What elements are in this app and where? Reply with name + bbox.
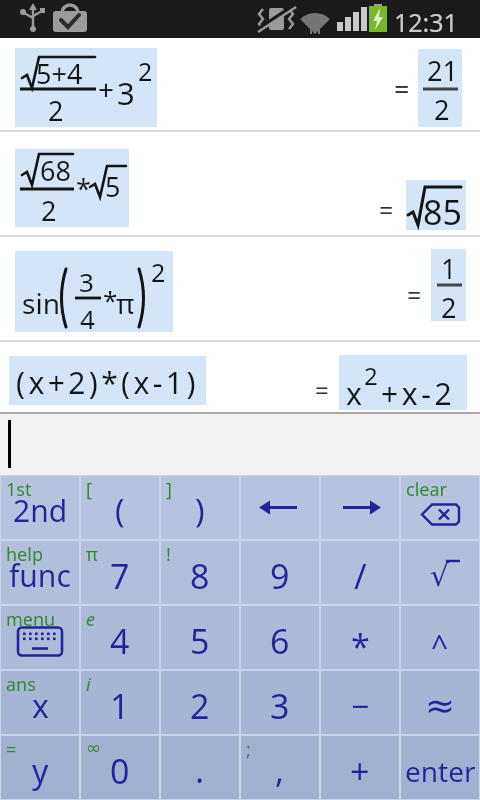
button[interactable]: − xyxy=(321,671,399,734)
staticText: help xyxy=(6,542,43,567)
button[interactable]: menu xyxy=(1,606,79,669)
button[interactable]: * xyxy=(321,606,399,669)
button[interactable]: ( xyxy=(81,476,159,539)
button[interactable]: enter xyxy=(401,736,479,799)
button[interactable]: clear xyxy=(401,476,479,539)
button[interactable]: . xyxy=(161,736,239,799)
staticText: 2nd xyxy=(13,490,68,531)
staticText: = xyxy=(407,278,422,312)
button[interactable]: ^ xyxy=(401,606,479,669)
staticText: 9 xyxy=(270,553,290,599)
staticText: ans xyxy=(6,672,36,697)
staticText: 2 xyxy=(151,255,166,289)
staticText: 5+4 xyxy=(36,55,83,92)
staticText: + xyxy=(98,70,115,108)
staticText: x xyxy=(346,373,362,414)
button[interactable]: x xyxy=(1,671,79,734)
button[interactable]: / xyxy=(321,541,399,604)
button[interactable]: 7 xyxy=(81,541,159,604)
staticText: 21 xyxy=(427,52,458,89)
staticText: y xyxy=(32,749,49,793)
staticText: , xyxy=(275,747,285,793)
button[interactable]: 8 xyxy=(161,541,239,604)
button[interactable]: ≈ xyxy=(401,671,479,734)
button[interactable]: (x+2)*(x-1) xyxy=(0,342,480,412)
staticText: 1 xyxy=(110,683,130,729)
staticText: 12:31 xyxy=(394,5,458,39)
staticText: π xyxy=(86,542,98,567)
button[interactable]: 3 xyxy=(241,671,319,734)
staticText: 8 xyxy=(190,553,210,599)
button[interactable]: sin xyxy=(0,238,480,342)
staticText: i xyxy=(86,672,91,697)
staticText: = xyxy=(6,737,17,762)
staticText: π xyxy=(116,284,135,322)
staticText: enter xyxy=(405,752,476,790)
button[interactable]: 0 xyxy=(81,736,159,799)
staticText: 68 xyxy=(40,152,71,189)
staticText: +x-2 xyxy=(381,373,456,414)
staticText: * xyxy=(76,170,91,207)
staticText: ≈ xyxy=(425,685,456,727)
staticText: + xyxy=(350,748,370,794)
staticText: 3 xyxy=(117,72,135,114)
staticText: ∞ xyxy=(86,737,101,758)
staticText: sin xyxy=(22,284,60,322)
button[interactable]: 6 xyxy=(241,606,319,669)
staticText: 3 xyxy=(79,264,94,299)
staticText: ) xyxy=(195,489,205,533)
staticText: 5 xyxy=(190,618,210,664)
staticText: (x+2)*(x-1) xyxy=(16,362,199,403)
staticText: 5 xyxy=(105,168,121,205)
staticText: func xyxy=(9,555,71,596)
staticText: [ xyxy=(86,477,92,502)
staticText: = xyxy=(394,70,410,107)
button[interactable]: y xyxy=(1,736,79,799)
staticText: √ xyxy=(430,558,450,593)
button[interactable]: √ xyxy=(401,541,479,604)
staticText: 85 xyxy=(423,189,462,235)
button[interactable]: 5+4 xyxy=(0,40,480,132)
button[interactable]: 2nd xyxy=(1,476,79,539)
staticText: 2 xyxy=(138,54,153,88)
staticText: 1 xyxy=(441,250,457,287)
button[interactable]: 9 xyxy=(241,541,319,604)
staticText: / xyxy=(354,553,367,599)
button[interactable]: ) xyxy=(161,476,239,539)
button[interactable]: func xyxy=(1,541,79,604)
button[interactable]: 1 xyxy=(81,671,159,734)
staticText: ] xyxy=(166,477,172,502)
staticText: 2 xyxy=(441,289,457,326)
staticText: = xyxy=(379,193,394,227)
staticText: = xyxy=(315,373,329,406)
staticText: − xyxy=(351,684,370,728)
staticText: ( xyxy=(115,489,125,533)
button[interactable]: + xyxy=(321,736,399,799)
button[interactable] xyxy=(321,476,399,539)
staticText: 2 xyxy=(41,192,57,229)
staticText: 2 xyxy=(434,91,450,128)
button[interactable]: 2 xyxy=(161,671,239,734)
staticText: ^ xyxy=(431,625,449,666)
button[interactable]: , xyxy=(241,736,319,799)
staticText: clear xyxy=(406,477,447,502)
staticText: 2 xyxy=(364,359,378,392)
staticText: menu xyxy=(6,607,56,632)
button[interactable] xyxy=(241,476,319,539)
staticText: 4 xyxy=(110,618,130,664)
staticText: e xyxy=(86,607,95,632)
button[interactable]: 68 xyxy=(0,133,480,236)
staticText: * xyxy=(103,282,118,317)
button[interactable]: 5 xyxy=(161,606,239,669)
staticText: 1st xyxy=(6,477,32,502)
staticText: ; xyxy=(246,737,251,762)
staticText: 0 xyxy=(110,748,130,794)
staticText: 2 xyxy=(190,683,210,729)
staticText: . xyxy=(195,747,205,793)
staticText: x xyxy=(32,684,49,728)
button[interactable] xyxy=(0,414,480,475)
staticText: 6 xyxy=(270,618,290,664)
staticText: 3 xyxy=(270,683,290,729)
staticText: 7 xyxy=(110,553,130,599)
button[interactable]: 4 xyxy=(81,606,159,669)
